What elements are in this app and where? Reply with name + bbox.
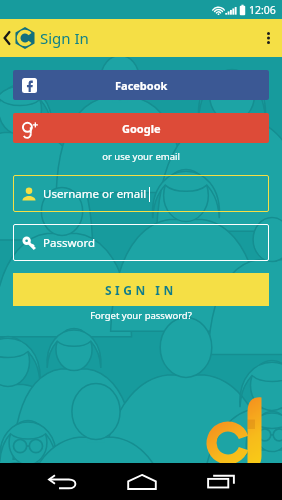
- button[interactable]: More options: [254, 24, 282, 52]
- button[interactable]: Back: [0, 24, 14, 52]
- button[interactable]: Username or email: [13, 175, 269, 212]
- button[interactable]: Password: [13, 224, 269, 261]
- button[interactable]: Back: [40, 463, 85, 500]
- staticText: 12:06: [249, 3, 276, 17]
- button[interactable]: Recent apps: [198, 463, 243, 500]
- button[interactable]: Google: [13, 113, 269, 143]
- button[interactable]: SIGN IN: [13, 273, 269, 306]
- staticText: Google: [122, 121, 161, 136]
- button[interactable]: Home: [119, 463, 164, 500]
- staticText: Forget your password?: [0, 309, 282, 322]
- staticText: SIGN IN: [105, 282, 177, 298]
- staticText: Sign In: [40, 28, 89, 48]
- staticText: or use your email: [0, 150, 282, 163]
- staticText: Password: [43, 235, 96, 251]
- staticText: Username or email: [43, 186, 147, 202]
- button[interactable]: Facebook: [13, 70, 269, 100]
- staticText: Facebook: [115, 78, 168, 93]
